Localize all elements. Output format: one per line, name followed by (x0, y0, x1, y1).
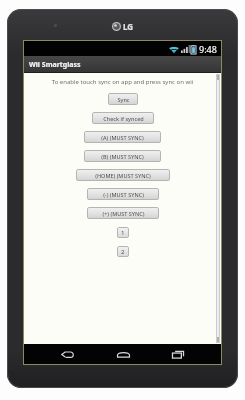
staticText: (-) (MUST SYNC) (103, 191, 144, 198)
button[interactable]: Sync (108, 93, 138, 105)
button[interactable]: Check if synced (92, 112, 154, 124)
button[interactable]: (HOME) (MUST SYNC) (76, 169, 170, 181)
staticText: 2 (121, 248, 125, 256)
staticText: To enable touch sync on app and press sy… (30, 78, 215, 86)
staticText: (HOME) (MUST SYNC) (95, 172, 151, 179)
staticText: LG (123, 21, 134, 32)
staticText: 9:48 (199, 43, 217, 55)
button[interactable]: Recent apps (165, 344, 191, 364)
button[interactable]: (B) (MUST SYNC) (84, 150, 161, 162)
staticText: Sync (117, 96, 130, 103)
staticText: 1 (121, 229, 125, 237)
button[interactable]: 1 (117, 227, 129, 238)
staticText: (A) (MUST SYNC) (101, 134, 144, 141)
button[interactable]: Back (54, 344, 80, 364)
button[interactable]: Wii Smartglass (24, 56, 221, 73)
button[interactable]: 2 (117, 246, 129, 257)
button[interactable]: (+) (MUST SYNC) (87, 207, 159, 219)
staticText: (+) (MUST SYNC) (102, 210, 145, 217)
button[interactable]: (-) (MUST SYNC) (87, 188, 159, 200)
button[interactable]: (A) (MUST SYNC) (84, 131, 161, 143)
staticText: Check if synced (103, 115, 144, 122)
button[interactable]: Home (110, 344, 136, 364)
staticText: Wii Smartglass (29, 60, 81, 70)
staticText: (B) (MUST SYNC) (101, 153, 144, 160)
